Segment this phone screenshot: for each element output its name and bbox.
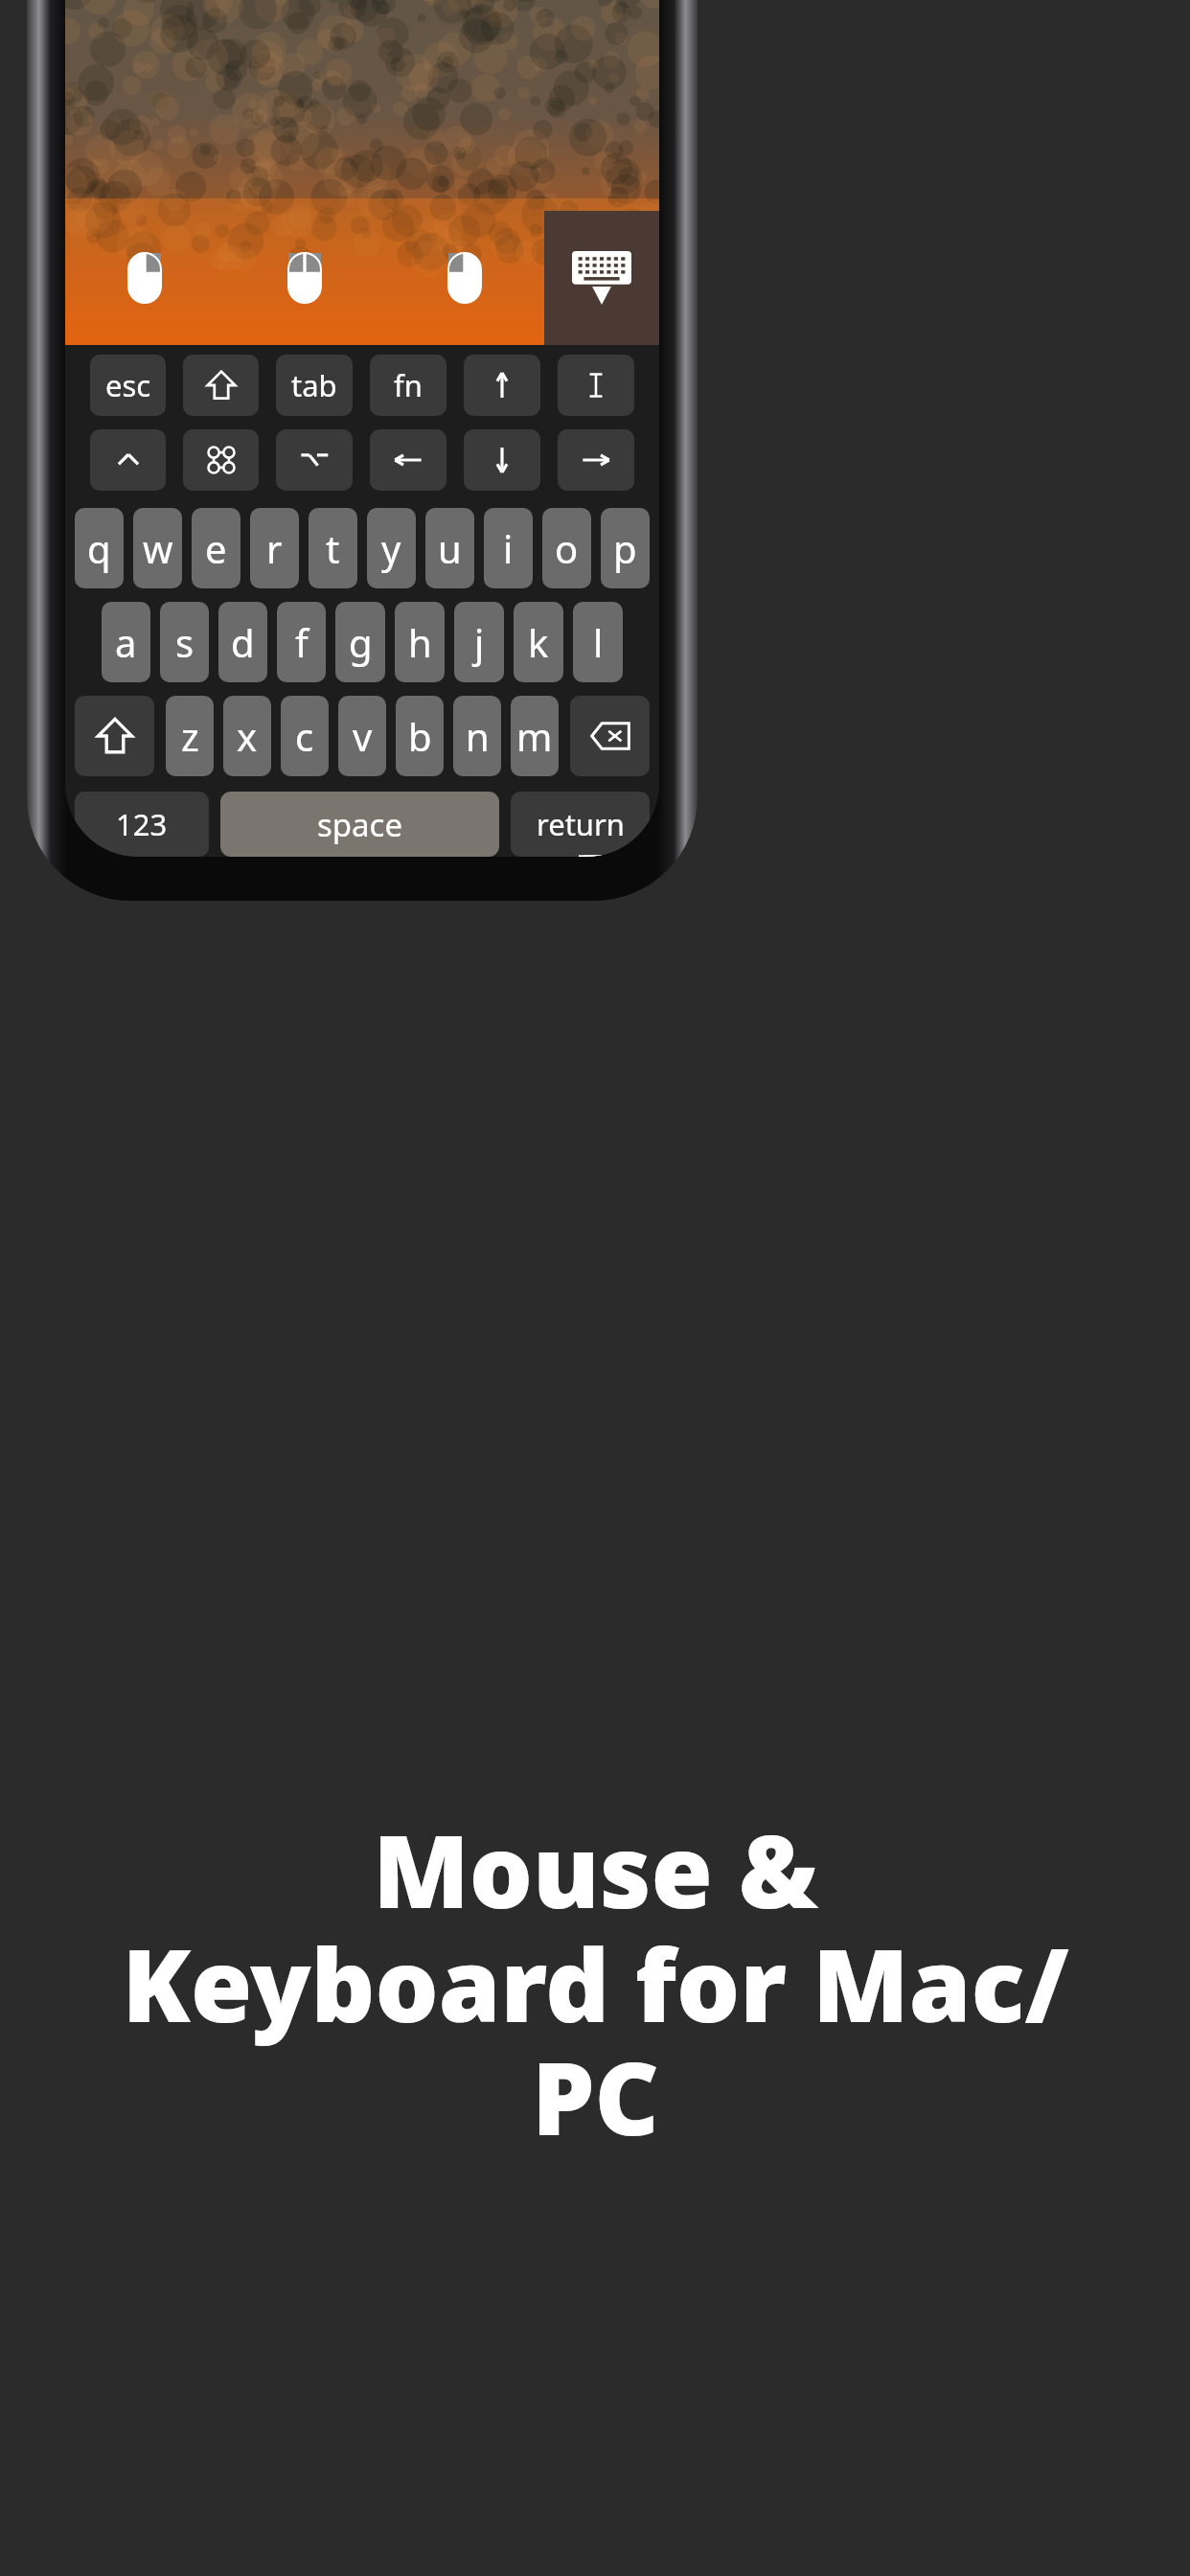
button[interactable]: u: [425, 508, 474, 588]
button[interactable]: cmd: [183, 429, 259, 491]
button[interactable]: return: [511, 792, 650, 857]
button[interactable]: shiftbig: [75, 696, 154, 776]
staticText: tab: [291, 365, 337, 405]
button[interactable]: Mouse button 1: [65, 211, 224, 345]
staticText: l: [593, 616, 604, 668]
staticText: x: [237, 710, 258, 762]
button[interactable]: c: [281, 696, 329, 776]
button[interactable]: bksp: [570, 696, 650, 776]
button[interactable]: down: [464, 429, 540, 491]
staticText: i: [503, 522, 514, 574]
staticText: f: [295, 616, 309, 668]
staticText: e: [205, 522, 227, 574]
button[interactable]: t: [309, 508, 357, 588]
button[interactable]: shift: [183, 355, 259, 416]
staticText: d: [231, 616, 255, 668]
button[interactable]: tab: [276, 355, 353, 416]
button[interactable]: j: [454, 602, 504, 682]
button[interactable]: i: [484, 508, 533, 588]
button[interactable]: esc: [90, 355, 166, 416]
staticText: 123: [116, 804, 168, 844]
staticText: t: [326, 522, 340, 574]
button[interactable]: v: [338, 696, 386, 776]
staticText: h: [408, 616, 432, 668]
staticText: Mouse & Keyboard for Mac/ PC: [122, 1802, 1069, 2164]
staticText: o: [555, 522, 579, 574]
staticText: m: [516, 710, 553, 762]
staticText: a: [115, 616, 137, 668]
staticText: space: [317, 803, 403, 846]
button[interactable]: fn: [370, 355, 446, 416]
button[interactable]: q: [75, 508, 124, 588]
button[interactable]: f: [277, 602, 326, 682]
button[interactable]: alt: [276, 429, 353, 491]
button[interactable]: up: [464, 355, 540, 416]
staticText: w: [143, 522, 173, 574]
staticText: g: [349, 616, 373, 668]
button[interactable]: Hide keyboard: [544, 211, 659, 345]
button[interactable]: x: [223, 696, 271, 776]
staticText: v: [353, 710, 373, 762]
staticText: z: [181, 710, 199, 762]
staticText: c: [295, 710, 314, 762]
button[interactable]: a: [102, 602, 150, 682]
staticText: k: [528, 616, 549, 668]
button[interactable]: right: [558, 429, 634, 491]
button[interactable]: d: [218, 602, 267, 682]
button[interactable]: Mouse button 2: [224, 211, 384, 345]
button[interactable]: r: [250, 508, 299, 588]
button[interactable]: w: [133, 508, 182, 588]
button[interactable]: ibeam: [558, 355, 634, 416]
button[interactable]: k: [514, 602, 563, 682]
staticText: q: [87, 522, 111, 574]
staticText: n: [466, 710, 490, 762]
staticText: fn: [394, 365, 423, 405]
button[interactable]: m: [511, 696, 559, 776]
staticText: return: [537, 804, 625, 844]
staticText: y: [381, 522, 401, 574]
button[interactable]: b: [396, 696, 444, 776]
staticText: p: [613, 522, 637, 574]
button[interactable]: l: [573, 602, 623, 682]
button[interactable]: h: [395, 602, 445, 682]
button[interactable]: g: [335, 602, 385, 682]
button[interactable]: space: [220, 792, 499, 857]
button[interactable]: 123: [75, 792, 209, 857]
button[interactable]: left: [370, 429, 446, 491]
staticText: esc: [105, 365, 151, 405]
staticText: s: [175, 616, 195, 668]
button[interactable]: n: [453, 696, 501, 776]
button[interactable]: Mouse button 3: [384, 211, 544, 345]
button[interactable]: ctrl: [90, 429, 166, 491]
button[interactable]: o: [542, 508, 591, 588]
button[interactable]: y: [367, 508, 416, 588]
staticText: u: [438, 522, 462, 574]
staticText: b: [408, 710, 432, 762]
staticText: j: [474, 616, 485, 668]
button[interactable]: p: [601, 508, 650, 588]
button[interactable]: s: [160, 602, 209, 682]
button[interactable]: z: [166, 696, 214, 776]
button[interactable]: e: [192, 508, 240, 588]
staticText: r: [266, 522, 283, 574]
